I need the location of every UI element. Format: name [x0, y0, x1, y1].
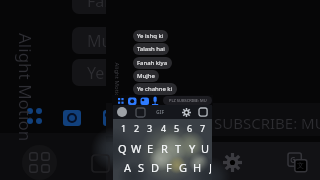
staticText: J — [209, 160, 213, 174]
button[interactable]: A — [121, 160, 135, 174]
staticText: D — [151, 160, 160, 174]
button[interactable]: Y — [185, 141, 199, 155]
staticText: 7 — [200, 122, 206, 134]
button[interactable]: Translate — [288, 153, 307, 172]
staticText: PLZ SUBSCRIBE: MU — [169, 98, 207, 103]
button[interactable]: F — [162, 160, 176, 174]
staticText: Alight Motion — [112, 62, 120, 101]
button[interactable]: 7 — [196, 122, 209, 134]
button[interactable]: 1 — [117, 122, 130, 134]
button[interactable]: Assistant — [117, 107, 127, 117]
button[interactable]: Stickers — [199, 108, 208, 117]
staticText: Y — [189, 141, 196, 155]
button[interactable]: Keyboard settings — [182, 108, 191, 117]
staticText: Q — [118, 141, 127, 155]
staticText: Ye ishq ki — [137, 32, 164, 40]
staticText: GIF — [156, 109, 165, 116]
button[interactable]: W — [129, 141, 143, 155]
button[interactable]: G — [176, 160, 190, 174]
button[interactable]: Settings — [223, 153, 242, 172]
staticText: Ye chahne ki — [137, 85, 173, 93]
button[interactable]: S — [134, 160, 148, 174]
button[interactable]: 6 — [183, 122, 196, 134]
button[interactable]: Ye ishq ki — [133, 30, 168, 42]
button[interactable]: Talash hai — [133, 43, 169, 55]
button[interactable]: H — [190, 160, 204, 174]
staticText: Fanah kiya — [137, 59, 168, 67]
button[interactable]: Q — [115, 141, 129, 155]
button[interactable]: 2 — [130, 122, 143, 134]
button[interactable]: Ye chahne ki — [133, 83, 177, 95]
button[interactable]: Apps — [22, 145, 57, 180]
button[interactable]: 5 — [170, 122, 183, 134]
button[interactable]: Mujhe — [133, 70, 159, 82]
button[interactable]: R — [157, 141, 171, 155]
button[interactable]: Gallery — [92, 155, 109, 172]
staticText: U — [201, 141, 210, 155]
staticText: 1 — [121, 122, 127, 134]
staticText: 文 — [297, 161, 304, 170]
button[interactable]: PLZ SUBSCRIBE: MU — [163, 96, 212, 105]
staticText: E — [147, 141, 154, 155]
staticText: G — [290, 154, 296, 165]
button[interactable]: E — [143, 141, 157, 155]
staticText: 2 — [134, 122, 140, 134]
staticText: T — [175, 141, 182, 155]
button[interactable]: 4 — [157, 122, 170, 134]
staticText: A — [124, 160, 132, 174]
staticText: W — [131, 141, 142, 155]
staticText: 3 — [147, 122, 153, 134]
button[interactable]: 3 — [143, 122, 156, 134]
button[interactable]: T — [171, 141, 185, 155]
staticText: 5 — [174, 122, 180, 134]
staticText: Mujhe — [137, 72, 155, 80]
staticText: SUBSCRIBE: MU — [214, 113, 320, 133]
staticText: Fanah — [87, 0, 106, 12]
button[interactable]: U — [198, 141, 212, 155]
staticText: 6 — [187, 122, 193, 134]
button[interactable]: J — [204, 160, 218, 174]
staticText: H — [193, 160, 202, 174]
staticText: Mujhe — [87, 30, 106, 52]
staticText: Alight Motion — [14, 33, 37, 142]
staticText: F — [166, 160, 172, 174]
button[interactable]: D — [148, 160, 162, 174]
button[interactable]: Fanah kiya — [133, 57, 172, 69]
button[interactable]: Recent — [136, 108, 145, 117]
staticText: Talash hai — [137, 45, 165, 53]
staticText: S — [138, 160, 145, 174]
staticText: 4 — [161, 122, 167, 134]
staticText: G — [179, 160, 188, 174]
staticText: R — [161, 141, 168, 155]
staticText: Ye ch — [87, 62, 106, 84]
